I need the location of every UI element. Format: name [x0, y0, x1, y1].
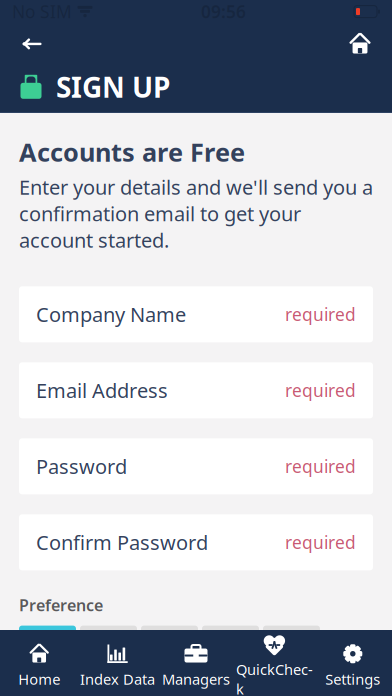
button[interactable]: QuickCheck: [235, 625, 314, 696]
button[interactable]: Password: [19, 438, 373, 494]
staticText: SIGN UP: [56, 68, 170, 105]
staticText: No SIM: [12, 0, 72, 23]
staticText: Enter your details and we'll send you a …: [19, 174, 373, 253]
staticText: Email Address: [36, 377, 168, 404]
staticText: required: [285, 531, 356, 554]
button[interactable]: GBP: [19, 626, 76, 658]
button[interactable]: USD: [80, 626, 137, 658]
staticText: required: [285, 303, 356, 326]
button[interactable]: Company Name: [19, 286, 373, 342]
staticText: Index Data: [80, 669, 155, 689]
button[interactable]: Back: [14, 28, 50, 60]
staticText: Company Name: [36, 301, 186, 328]
staticText: Managers: [162, 669, 230, 689]
staticText: CAD: [270, 628, 312, 655]
staticText: required: [285, 379, 356, 402]
staticText: 09:56: [201, 0, 246, 23]
button[interactable]: Index Data: [78, 635, 157, 696]
button[interactable]: CAD: [263, 626, 320, 658]
button[interactable]: Settings: [314, 635, 392, 696]
staticText: CHF: [211, 628, 250, 655]
staticText: USD: [88, 628, 129, 655]
button[interactable]: Home: [0, 635, 78, 696]
button[interactable]: Managers: [157, 635, 235, 696]
staticText: required: [285, 455, 356, 478]
staticText: Home: [18, 669, 60, 689]
staticText: QuickCheck: [236, 659, 313, 696]
staticText: Password: [36, 453, 127, 480]
button[interactable]: Email Address: [19, 362, 373, 418]
button[interactable]: EUR: [141, 626, 198, 658]
button[interactable]: CHF: [202, 626, 259, 658]
staticText: EUR: [150, 628, 189, 655]
staticText: Settings: [325, 669, 380, 689]
staticText: Preference: [19, 594, 103, 615]
staticText: Accounts are Free: [19, 135, 245, 169]
button[interactable]: Home: [342, 28, 378, 60]
button[interactable]: Confirm Password: [19, 514, 373, 570]
staticText: Confirm Password: [36, 529, 208, 556]
staticText: GBP: [28, 628, 67, 655]
